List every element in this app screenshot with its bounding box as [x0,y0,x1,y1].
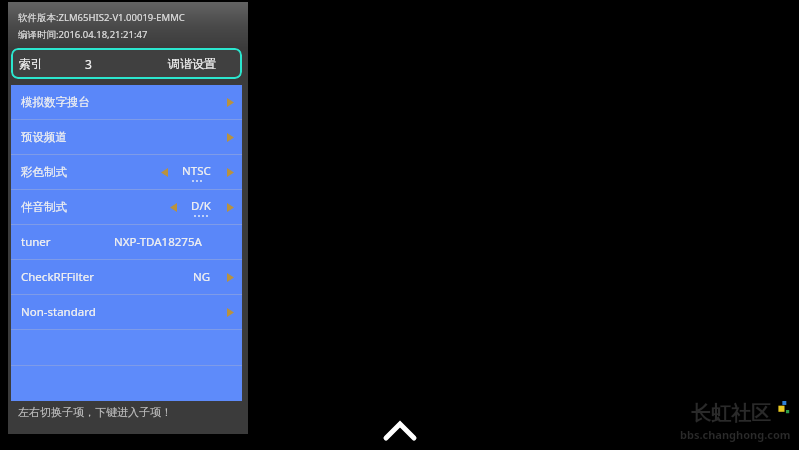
button[interactable]: Expand [380,420,420,442]
button[interactable]: CheckRFFilter [11,260,242,294]
staticText: bbs.changhong.com [680,427,791,442]
staticText: NG [193,269,211,285]
button[interactable]: tuner [11,225,242,259]
staticText: 编译时间:2016.04.18,21:21:47 [18,28,148,41]
staticText: tuner [21,234,51,250]
button[interactable]: 彩色制式 [11,155,242,189]
staticText: CheckRFFilter [21,269,94,285]
staticText: 伴音制式 [21,200,67,214]
staticText: 软件版本:ZLM65HIS2-V1.00019-EMMC [18,11,185,24]
button[interactable]: Non-standard [11,295,242,329]
staticText: 调谐设置 [168,56,216,71]
staticText: 预设频道 [21,130,67,144]
staticText: 长虹社区 [691,401,771,426]
staticText: NTSC [182,163,211,179]
staticText: D/K [191,198,211,214]
staticText: 彩色制式 [21,165,67,179]
button[interactable]: 索引 [11,48,242,79]
button[interactable]: 模拟数字搜台 [11,85,242,119]
staticText: NXP-TDA18275A [114,234,202,250]
staticText: Non-standard [21,304,96,320]
staticText: 3 [85,56,92,72]
button[interactable]: 伴音制式 [11,190,242,224]
button[interactable]: 预设频道 [11,120,242,154]
staticText: 模拟数字搜台 [21,95,90,109]
staticText: 左右切换子项，下键进入子项！ [18,405,172,419]
staticText: 索引 [19,56,43,71]
